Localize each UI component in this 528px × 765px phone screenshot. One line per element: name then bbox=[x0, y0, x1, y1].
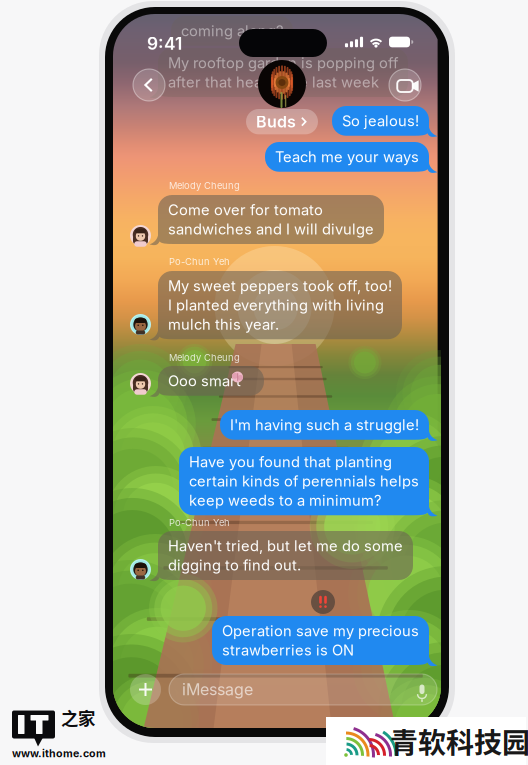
button[interactable]: Attach bbox=[130, 674, 161, 705]
button[interactable]: Back bbox=[133, 69, 165, 101]
staticText: My rooftop garden is popping off bbox=[168, 54, 398, 72]
staticText: sandwiches and I will divulge bbox=[168, 220, 374, 238]
staticText: Have you found that planting bbox=[189, 453, 392, 471]
staticText: Po-Chun Yeh bbox=[169, 256, 230, 267]
staticText: after that heat wave last week bbox=[168, 73, 379, 91]
staticText: 青软科技园 bbox=[390, 721, 528, 761]
staticText: certain kinds of perennials helps bbox=[189, 472, 419, 490]
staticText: 之家 bbox=[61, 705, 95, 730]
staticText: Teach me your ways bbox=[275, 148, 419, 166]
staticText: Melody Cheung bbox=[169, 180, 240, 191]
staticText: I planted everything with living bbox=[168, 296, 384, 314]
button[interactable]: FaceTime bbox=[389, 69, 421, 101]
staticText: 9:41 bbox=[147, 33, 182, 54]
staticText: strawberries is ON bbox=[222, 641, 354, 659]
staticText: digging to find out. bbox=[168, 556, 301, 574]
staticText: Ooo smart bbox=[168, 372, 254, 390]
staticText: I'm having such a struggle! bbox=[230, 416, 419, 434]
staticText: www.ithome.com bbox=[12, 747, 106, 760]
staticText: Buds bbox=[256, 112, 296, 131]
staticText: Operation save my precious bbox=[222, 622, 419, 640]
button[interactable]: iMessage bbox=[169, 674, 437, 705]
staticText: Come over for tomato bbox=[168, 201, 323, 219]
staticText: Melody Cheung bbox=[169, 352, 240, 363]
staticText: My sweet peppers took off, too! bbox=[168, 277, 392, 295]
button[interactable]: Buds bbox=[246, 60, 318, 134]
staticText: Po-Chun Yeh bbox=[169, 517, 230, 528]
staticText: So jealous! bbox=[342, 112, 419, 130]
staticText: Haven't tried, but let me do some bbox=[168, 537, 403, 555]
staticText: coming along? bbox=[181, 22, 283, 40]
staticText: keep weeds to a minimum? bbox=[189, 491, 381, 509]
staticText: iMessage bbox=[182, 680, 253, 699]
staticText: mulch this year. bbox=[168, 315, 279, 333]
